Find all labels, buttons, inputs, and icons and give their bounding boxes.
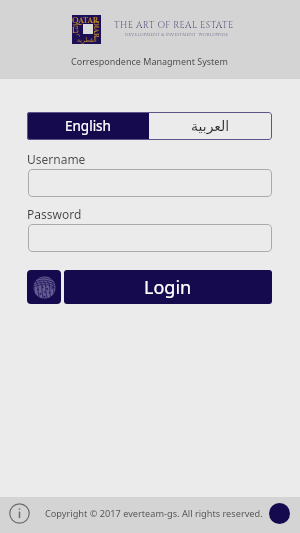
staticText: QATARI (72, 16, 101, 36)
staticText: THE ART OF REAL ESTATE (114, 19, 234, 31)
staticText: Correspondence Managment System (71, 55, 228, 67)
staticText: Login (144, 275, 192, 300)
staticText: DEVELOPMENT & INVESTMENT WORLDWIDE (125, 32, 229, 38)
button[interactable] (28, 169, 272, 197)
staticText: Username (27, 151, 86, 167)
button[interactable]: Info (9, 503, 30, 524)
button[interactable] (28, 224, 272, 252)
staticText: Copyright © 2017 everteam-gs. All rights… (45, 507, 263, 520)
button[interactable]: Fingerprint login (27, 270, 61, 304)
staticText: القطرية (77, 36, 97, 43)
staticText: Password (27, 206, 82, 222)
staticText: العربية (191, 118, 230, 134)
button[interactable]: English (27, 112, 149, 140)
staticText: DIAR (90, 20, 99, 38)
staticText: English (65, 117, 111, 135)
button[interactable]: More options (269, 503, 290, 524)
button[interactable]: العربية (149, 112, 272, 140)
button[interactable]: Login (64, 270, 272, 304)
staticText: الديار (71, 22, 78, 36)
